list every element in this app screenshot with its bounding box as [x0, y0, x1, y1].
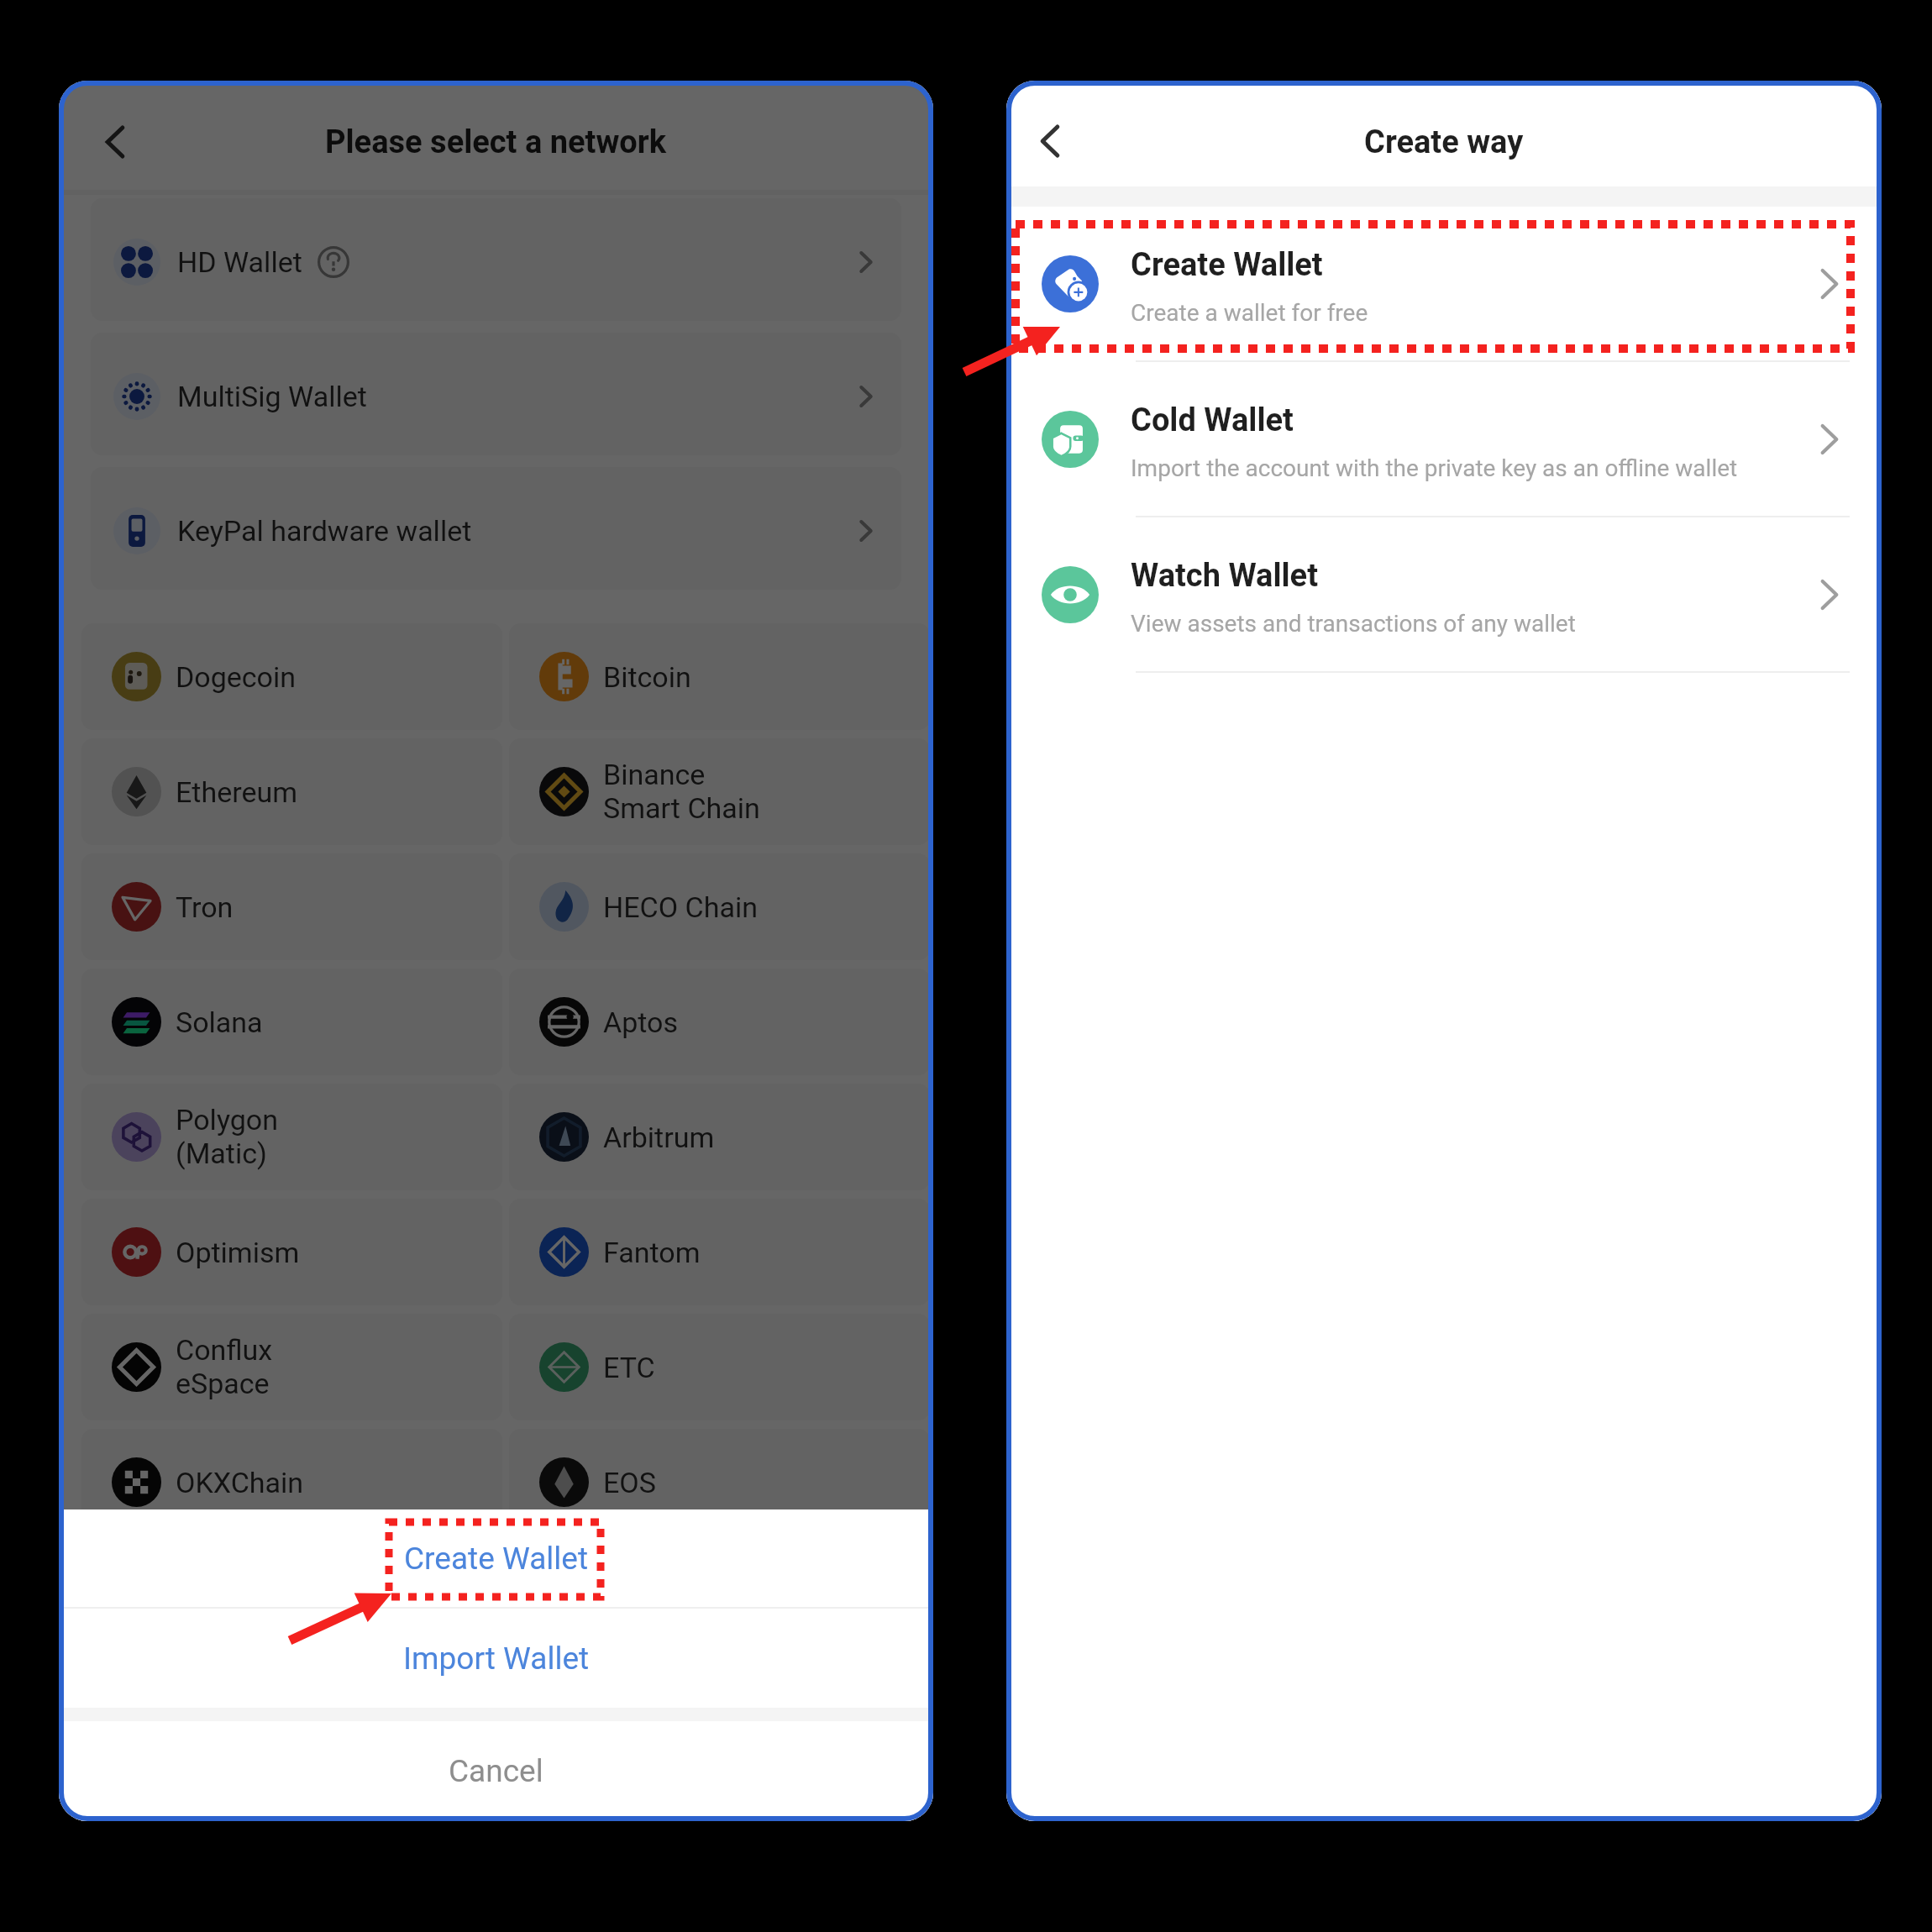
button[interactable]: Conflux eSpace	[81, 1314, 502, 1420]
staticText: EOS	[603, 1466, 656, 1499]
button[interactable]: Aptos	[509, 969, 930, 1075]
button[interactable]: Fantom	[509, 1199, 930, 1305]
staticText: MultiSig Wallet	[177, 380, 367, 413]
button[interactable]: Cancel	[59, 1721, 933, 1821]
staticText: Bitcoin	[603, 660, 691, 694]
staticText: HD Wallet	[177, 245, 302, 279]
staticText: OKXChain	[176, 1466, 304, 1499]
button[interactable]: Arbitrum	[509, 1084, 930, 1190]
staticText: HECO Chain	[603, 890, 758, 924]
staticText: View assets and transactions of any wall…	[1131, 610, 1576, 638]
staticText: ETC	[603, 1351, 655, 1384]
staticText: Fantom	[603, 1236, 701, 1269]
button[interactable]: MultiSig Wallet	[91, 333, 901, 455]
button[interactable]: Create Wallet	[1006, 207, 1882, 360]
button[interactable]: Back	[1006, 95, 1096, 187]
button[interactable]: Import Wallet	[59, 1609, 933, 1708]
staticText: Arbitrum	[603, 1121, 715, 1154]
button[interactable]: EOS	[509, 1429, 930, 1536]
staticText: Optimism	[176, 1236, 300, 1269]
staticText: Watch Wallet	[1131, 557, 1318, 595]
staticText: Create way	[1364, 123, 1524, 161]
button[interactable]: Watch Wallet	[1006, 517, 1882, 671]
button[interactable]: Optimism	[81, 1199, 502, 1305]
staticText: Polygon (Matic)	[176, 1103, 279, 1171]
staticText: Import Wallet	[403, 1641, 590, 1677]
staticText: Import the account with the private key …	[1131, 454, 1738, 482]
staticText: Solana	[176, 1005, 263, 1039]
staticText: Create a wallet for free	[1131, 299, 1368, 327]
button[interactable]: Ethereum	[81, 738, 502, 845]
button[interactable]: Solana	[81, 969, 502, 1075]
staticText: Ethereum	[176, 775, 297, 809]
staticText: Please select a network	[325, 123, 667, 161]
staticText: Aptos	[603, 1005, 679, 1039]
button[interactable]: Create Wallet	[59, 1509, 933, 1607]
button[interactable]: Polygon (Matic)	[81, 1084, 502, 1190]
staticText: Create Wallet	[404, 1541, 589, 1577]
staticText: Conflux eSpace	[176, 1333, 273, 1401]
button[interactable]: Tron	[81, 853, 502, 960]
staticText: Create Wallet	[1131, 246, 1323, 284]
button[interactable]: OKXChain	[81, 1429, 502, 1536]
staticText: Cold Wallet	[1131, 402, 1294, 439]
button[interactable]: HECO Chain	[509, 853, 930, 960]
button[interactable]: KeyPal hardware wallet	[91, 467, 901, 590]
button[interactable]: ETC	[509, 1314, 930, 1420]
button[interactable]: Cold Wallet	[1006, 362, 1882, 516]
staticText: KeyPal hardware wallet	[177, 514, 472, 548]
button[interactable]: Bitcoin	[509, 623, 930, 730]
staticText: Cancel	[449, 1753, 543, 1789]
staticText: Binance Smart Chain	[603, 758, 760, 826]
button[interactable]: Binance Smart Chain	[509, 738, 930, 845]
staticText: Dogecoin	[176, 660, 297, 694]
button[interactable]: HD Wallet	[91, 198, 901, 321]
button[interactable]: Back	[69, 96, 161, 188]
button[interactable]: Dogecoin	[81, 623, 502, 730]
staticText: Tron	[176, 890, 234, 924]
